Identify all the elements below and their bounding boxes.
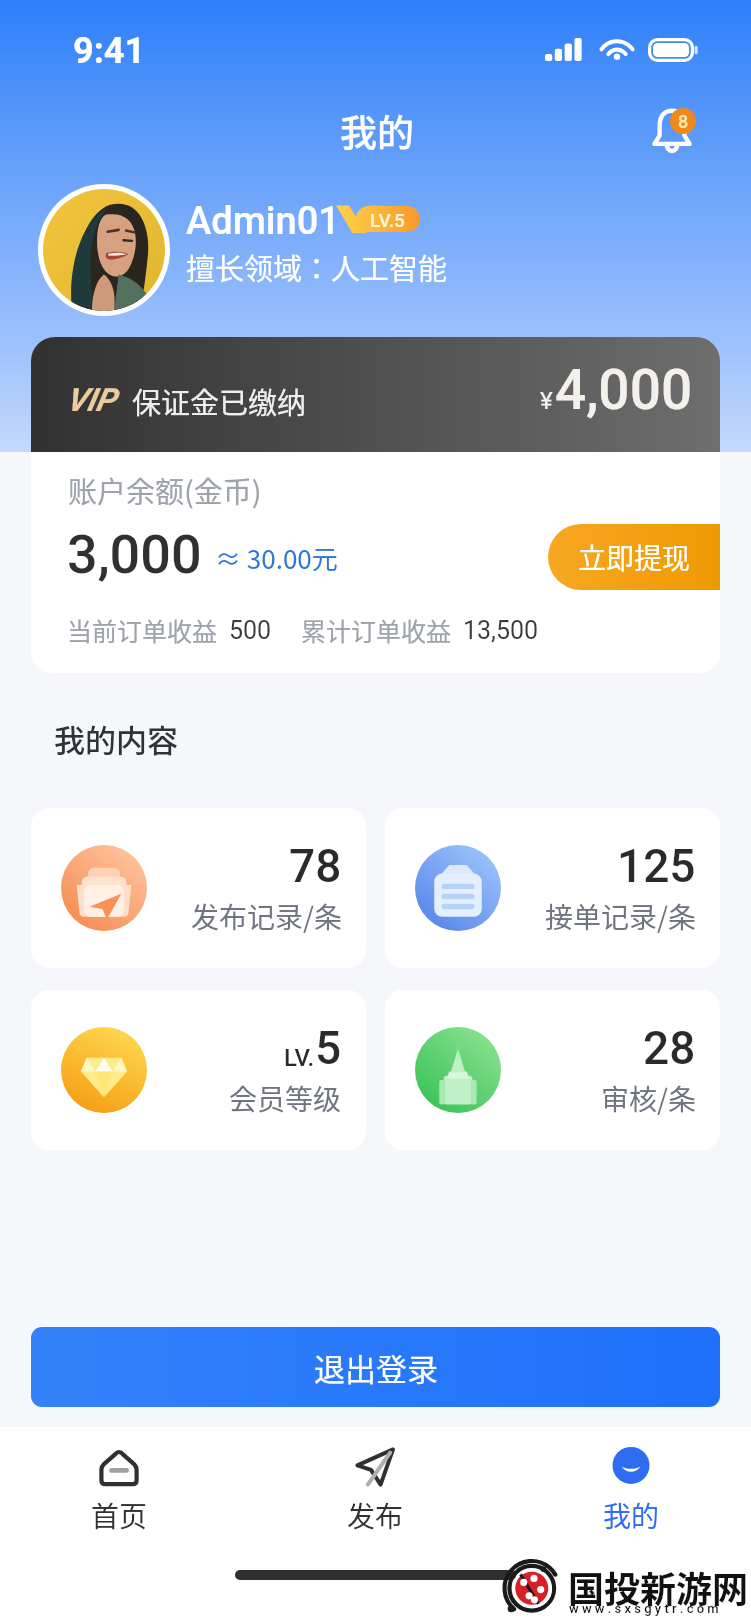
staticText: 累计订单收益 (301, 612, 452, 648)
staticText: 退出登录 (314, 1345, 438, 1390)
staticText: 125 (617, 839, 696, 893)
staticText: 500 (229, 616, 272, 645)
staticText: 接单记录/条 (545, 896, 696, 937)
button[interactable]: Notifications (652, 106, 696, 154)
button[interactable]: Profile photo (43, 189, 165, 311)
staticText: 发布 (347, 1495, 404, 1536)
button[interactable]: LV. (31, 990, 366, 1150)
staticText: 立即提现 (578, 537, 691, 578)
staticText: 我的 (603, 1495, 660, 1536)
staticText: LV.5 (370, 209, 405, 231)
staticText: 3,000 (67, 523, 202, 586)
staticText: VIP (66, 381, 116, 419)
staticText: 9:41 (73, 30, 146, 72)
button[interactable]: 发布 (265, 1433, 485, 1543)
button[interactable]: 我的 (521, 1433, 741, 1543)
staticText: w w w . s x s g y t r . c o m (569, 1601, 719, 1616)
staticText: 我的 (340, 104, 414, 158)
staticText: 账户余额(金币) (68, 469, 262, 511)
button[interactable]: 78 (31, 808, 366, 968)
staticText: 4,000 (555, 358, 693, 422)
staticText: 5 (315, 1021, 342, 1075)
staticText: 28 (643, 1021, 696, 1075)
staticText: 审核/条 (601, 1078, 696, 1119)
button[interactable]: VIP (31, 337, 720, 453)
button[interactable]: 首页 (9, 1433, 229, 1543)
staticText: 我的内容 (54, 716, 178, 761)
button[interactable]: 立即提现 (548, 524, 720, 590)
staticText: 当前订单收益 (67, 612, 218, 648)
button[interactable]: 125 (385, 808, 720, 968)
staticText: 78 (289, 839, 342, 893)
staticText: 13,500 (463, 616, 539, 645)
staticText: 国投新游网 (568, 1561, 749, 1613)
button[interactable]: 28 (385, 990, 720, 1150)
staticText: 擅长领域：人工智能 (186, 246, 448, 288)
staticText: LV. (284, 1044, 315, 1072)
staticText: 首页 (91, 1495, 148, 1536)
button[interactable]: 退出登录 (31, 1327, 720, 1407)
staticText: 发布记录/条 (191, 896, 342, 937)
staticText: 会员等级 (229, 1078, 342, 1119)
staticText: ¥ (540, 387, 553, 415)
staticText: 8 (678, 111, 689, 132)
staticText: Admin01 (186, 199, 340, 244)
staticText: 保证金已缴纳 (132, 380, 307, 422)
staticText: ≈ 30.00元 (215, 539, 338, 577)
